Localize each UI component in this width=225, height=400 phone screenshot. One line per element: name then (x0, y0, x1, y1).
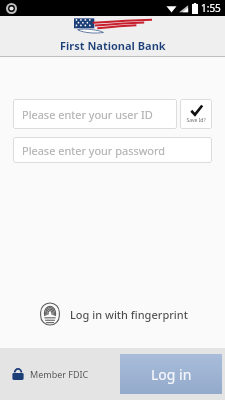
button[interactable]: Save Id (180, 99, 212, 129)
button[interactable]: Please enter your user ID (13, 99, 177, 129)
staticText: Member FDIC (30, 368, 89, 380)
button[interactable]: Log in (120, 354, 222, 394)
staticText: Log in (151, 365, 192, 384)
button[interactable]: Please enter your password (13, 137, 212, 163)
staticText: Log in with fingerprint (70, 307, 188, 322)
staticText: Please enter your password (22, 143, 166, 158)
button[interactable]: Log in with fingerprint (28, 298, 198, 330)
staticText: Please enter your user ID (22, 107, 153, 122)
staticText: 1:55 (201, 1, 221, 15)
button[interactable]: Member FDIC (7, 363, 93, 385)
staticText: First National Bank (60, 38, 166, 53)
staticText: Save Id? (186, 117, 206, 124)
